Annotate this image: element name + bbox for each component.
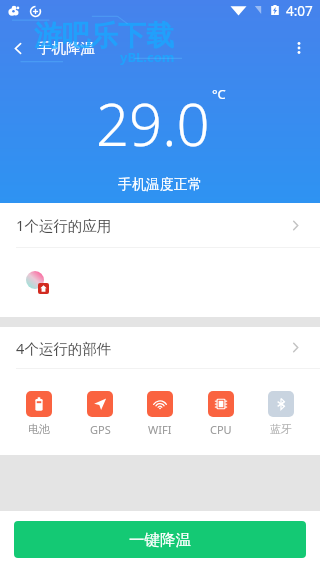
- button[interactable]: CPU: [194, 391, 248, 437]
- button[interactable]: 电池: [12, 391, 66, 436]
- staticText: 手机降温: [37, 39, 95, 57]
- button[interactable]: WIFI: [133, 391, 187, 437]
- staticText: 1个运行的应用: [16, 215, 112, 235]
- staticText: °C: [212, 85, 226, 103]
- button[interactable]: 4个运行的部件: [0, 327, 320, 368]
- button[interactable]: 1个运行的应用: [0, 203, 320, 247]
- staticText: 一键降温: [129, 530, 191, 550]
- staticText: 29.0: [96, 84, 210, 163]
- staticText: yBL.com: [120, 48, 175, 66]
- staticText: CPU: [210, 422, 232, 437]
- button[interactable]: 一键降温: [14, 521, 306, 558]
- staticText: 蓝牙: [270, 422, 292, 436]
- button[interactable]: More options: [278, 22, 320, 74]
- staticText: 4个运行的部件: [16, 338, 112, 358]
- staticText: 手机温度正常: [118, 176, 202, 194]
- staticText: 游吧乐下载: [34, 18, 174, 53]
- button[interactable]: Back: [0, 22, 37, 74]
- staticText: 4:07: [286, 2, 313, 20]
- staticText: GPS: [90, 422, 111, 437]
- staticText: 电池: [28, 422, 50, 436]
- button[interactable]: GPS: [73, 391, 127, 437]
- staticText: WIFI: [148, 422, 172, 437]
- button[interactable]: 蓝牙: [254, 391, 308, 436]
- button[interactable]: Running app: [26, 271, 50, 295]
